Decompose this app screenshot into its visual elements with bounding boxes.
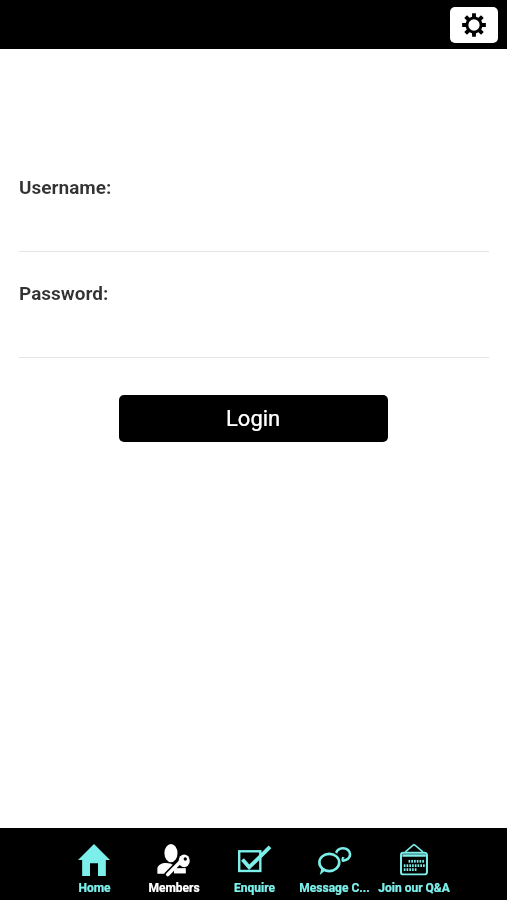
staticText: Message C...	[299, 881, 370, 895]
staticText: Members	[148, 881, 200, 895]
staticText: Login	[226, 406, 281, 432]
button[interactable]: Settings	[450, 7, 498, 43]
staticText: Enquire	[234, 881, 275, 895]
button[interactable]: Login	[119, 395, 388, 442]
button[interactable]: Members	[134, 828, 214, 900]
button[interactable]: Enquire	[214, 828, 294, 900]
staticText: Username:	[19, 176, 112, 198]
button[interactable]: Join our Q&A	[374, 828, 454, 900]
staticText: Home	[78, 881, 111, 895]
staticText: Join our Q&A	[378, 881, 450, 895]
button[interactable]: Message C...	[294, 828, 374, 900]
button[interactable]: Home	[54, 828, 134, 900]
staticText: Password:	[19, 282, 109, 304]
